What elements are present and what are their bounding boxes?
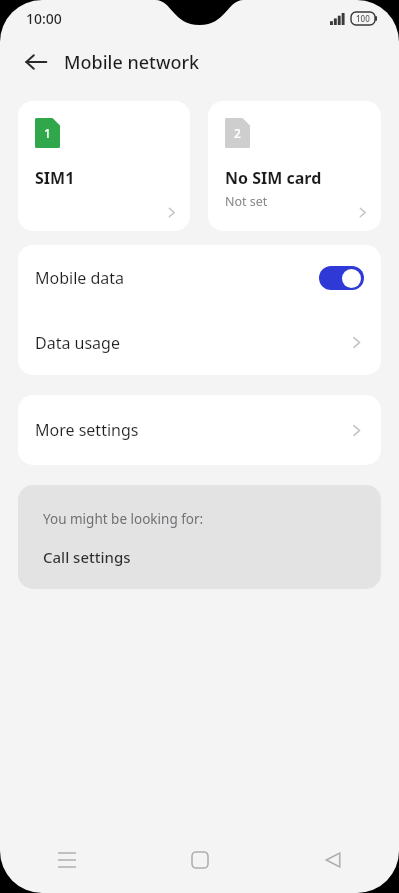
button[interactable]: Back [14,40,58,84]
button[interactable]: 2 [208,101,381,231]
staticText: Call settings [43,547,131,567]
button[interactable]: Recent apps [0,827,133,893]
staticText: 100 [356,13,370,24]
staticText: 2 [234,125,241,141]
staticText: You might be looking for: [43,510,204,528]
button[interactable]: More settings [18,395,381,465]
button[interactable]: 1 [18,101,190,231]
staticText: 1 [44,125,51,141]
staticText: 10:00 [26,9,62,28]
button[interactable]: Call settings [43,547,131,567]
staticText: Data usage [35,332,120,354]
button[interactable]: Home [133,827,266,893]
button[interactable]: Back [266,827,399,893]
staticText: More settings [35,419,139,441]
staticText: Not set [225,193,268,210]
button[interactable]: Mobile data [18,245,381,310]
button[interactable]: Mobile data toggle [319,266,364,290]
staticText: No SIM card [225,167,322,189]
button[interactable]: Data usage [18,310,381,375]
staticText: Mobile network [64,50,200,75]
staticText: Mobile data [35,267,125,289]
staticText: SIM1 [35,167,75,189]
